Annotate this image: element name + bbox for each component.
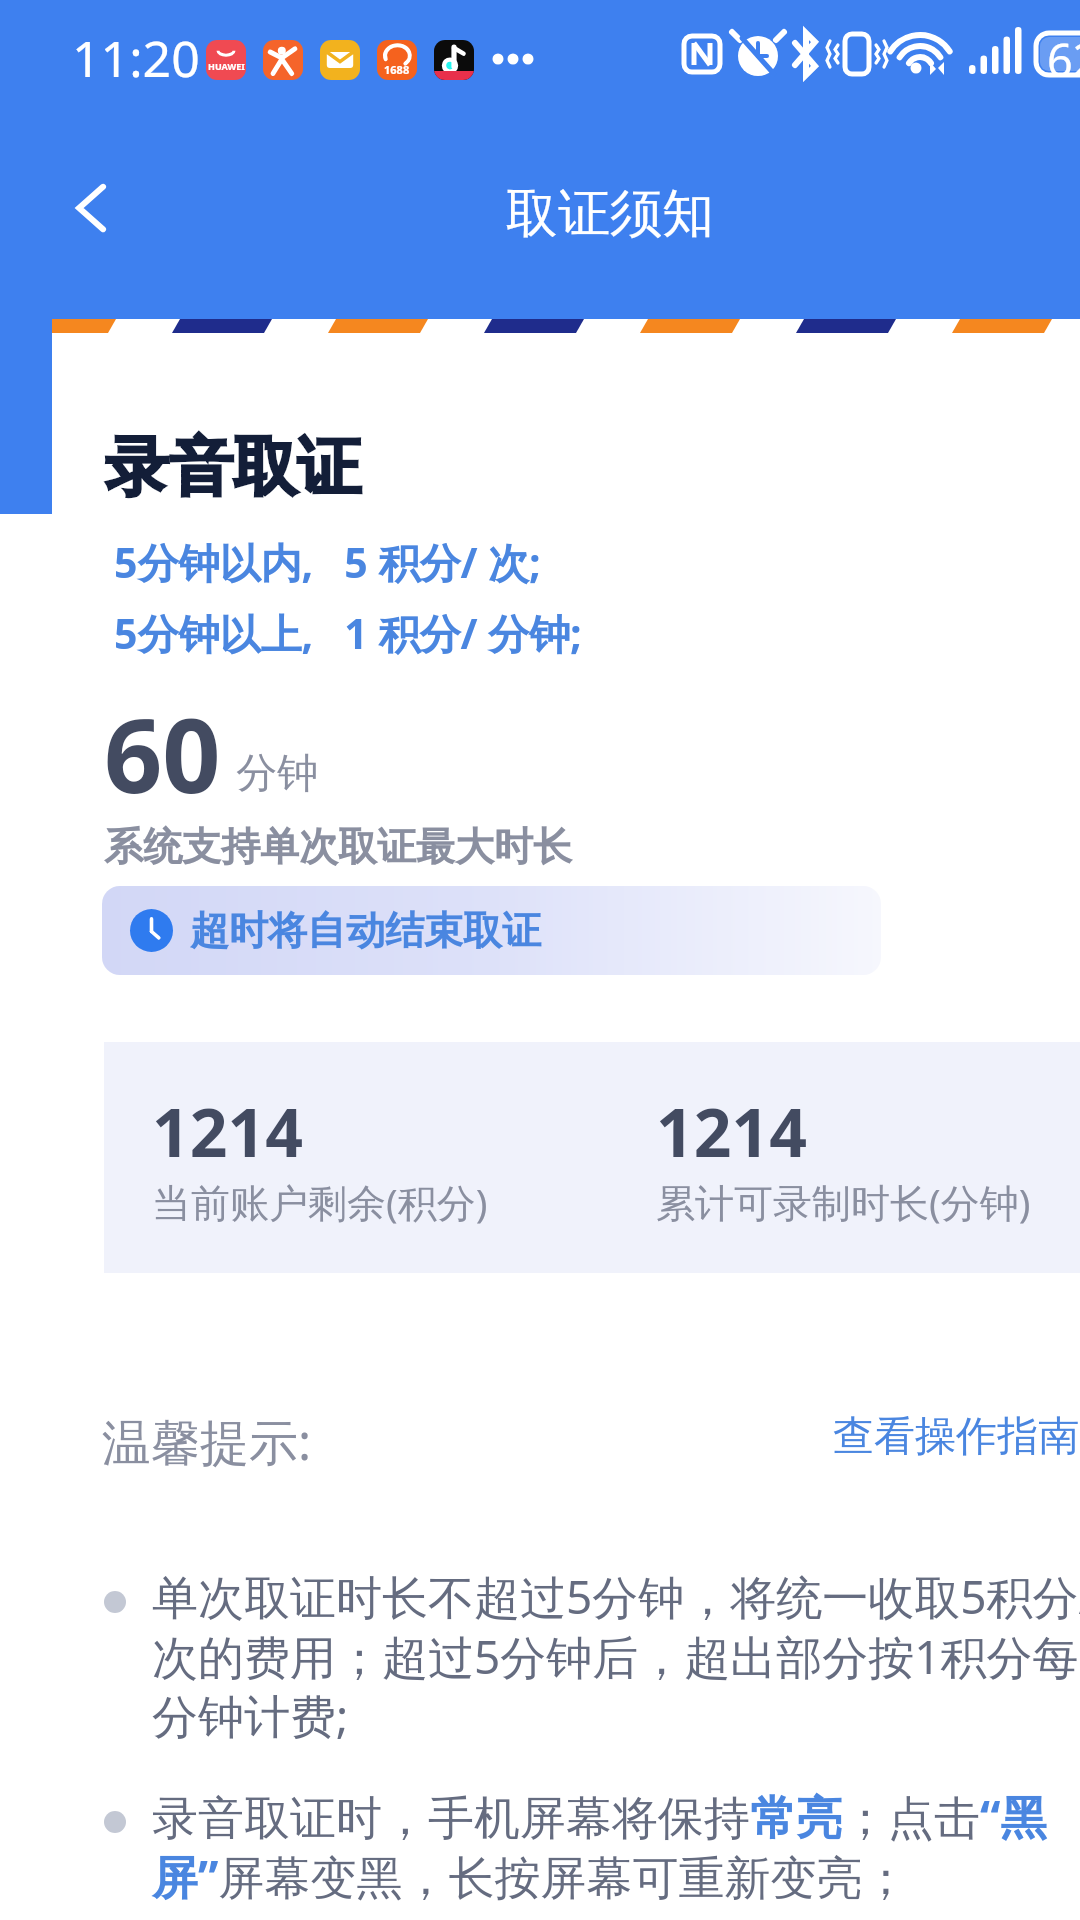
staticText: 1214 <box>656 1086 808 1176</box>
staticText: 查看操作指南 <box>833 1411 1079 1463</box>
staticText: 取证须知 <box>506 181 714 247</box>
button[interactable]: 超时将自动结束取证 <box>102 886 881 975</box>
button[interactable]: 查看操作指南 <box>823 1396 1080 1476</box>
staticText: 当前账户剩余(积分) <box>152 1175 488 1228</box>
staticText: 系统支持单次取证最大时长 <box>104 822 572 871</box>
staticText: 5分钟以上, 1 积分/ 分钟; <box>114 605 582 661</box>
staticText: 11:20 <box>72 24 200 92</box>
staticText: 分钟 <box>236 748 318 800</box>
staticText: 1214 <box>152 1086 304 1176</box>
staticText: HUAWEI <box>208 60 245 72</box>
staticText: 1688 <box>384 62 410 77</box>
staticText: 累计可录制时长(分钟) <box>656 1175 1031 1228</box>
staticText: 5分钟以内, 5 积分/ 次; <box>114 534 541 590</box>
staticText: 单次取证时长不超过5分钟，将统一收取5积分/次的费用；超过5分钟后，超出部分按1… <box>152 1565 1080 1746</box>
staticText: 录音取证时，手机屏幕将保持常亮；点击“黑屏”屏幕变黑，长按屏幕可重新变亮； <box>152 1785 1080 1907</box>
staticText: 60 <box>104 684 221 823</box>
button[interactable]: Back <box>37 153 147 263</box>
staticText: 超时将自动结束取证 <box>190 906 541 955</box>
staticText: 录音取证 <box>105 427 361 508</box>
staticText: 62 <box>1047 29 1080 90</box>
staticText: 温馨提示: <box>102 1408 312 1475</box>
